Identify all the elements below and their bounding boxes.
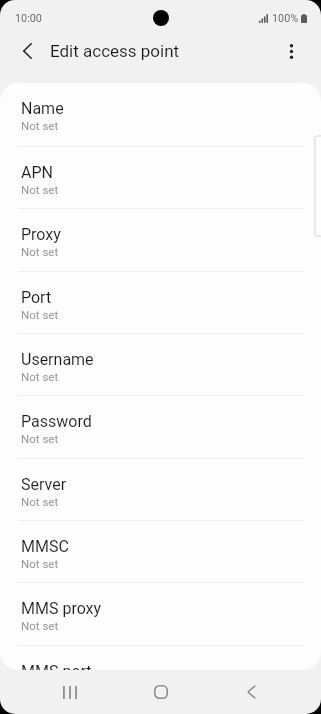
staticText: 10:00: [15, 12, 42, 25]
button[interactable]: Password: [0, 395, 321, 457]
staticText: MMS proxy: [21, 599, 102, 618]
button[interactable]: Recent apps: [46, 670, 94, 714]
button[interactable]: Proxy: [0, 208, 321, 270]
button[interactable]: Server: [0, 458, 321, 520]
staticText: Not set: [21, 557, 59, 570]
staticText: Edit access point: [50, 41, 180, 61]
button[interactable]: MMS proxy: [0, 582, 321, 644]
staticText: Not set: [21, 495, 59, 508]
staticText: Not set: [21, 119, 59, 132]
staticText: Not set: [21, 432, 59, 445]
staticText: Proxy: [21, 225, 61, 244]
staticText: Port: [21, 288, 52, 307]
staticText: Name: [21, 99, 64, 118]
staticText: Not set: [21, 370, 59, 383]
staticText: MMS port: [21, 662, 92, 670]
staticText: APN: [21, 163, 53, 182]
staticText: Not set: [21, 183, 59, 196]
staticText: Password: [21, 412, 92, 431]
staticText: Username: [21, 350, 94, 369]
button[interactable]: Back: [227, 670, 275, 714]
button[interactable]: Navigate up: [8, 32, 46, 70]
button[interactable]: More options: [272, 32, 310, 70]
staticText: Not set: [21, 308, 59, 321]
button[interactable]: APN: [0, 146, 321, 208]
button[interactable]: MMSC: [0, 520, 321, 582]
staticText: Not set: [21, 245, 59, 258]
button[interactable]: Username: [0, 333, 321, 395]
button[interactable]: Home: [137, 670, 185, 714]
staticText: MMSC: [21, 537, 69, 556]
button[interactable]: Name: [0, 83, 321, 146]
button[interactable]: MMS port: [0, 645, 321, 670]
staticText: Not set: [21, 619, 59, 632]
button[interactable]: Port: [0, 271, 321, 333]
staticText: Server: [21, 475, 67, 494]
staticText: 100%: [272, 12, 299, 25]
